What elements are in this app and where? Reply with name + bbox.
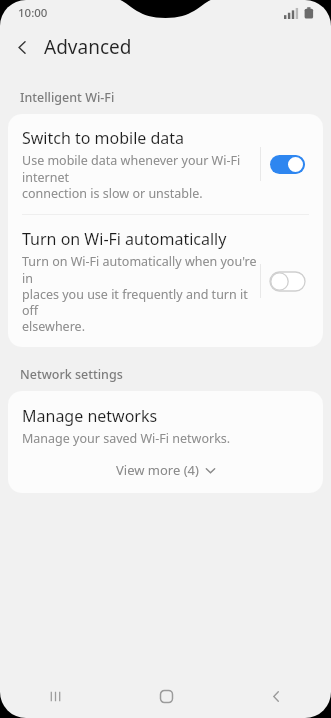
button[interactable]: Turn on Wi-Fi automatically: [8, 215, 323, 347]
staticText: Turn on Wi-Fi automatically: [22, 228, 227, 250]
button[interactable]: Toggle on: [261, 142, 313, 186]
staticText: Intelligent Wi-Fi: [20, 89, 115, 106]
button[interactable]: Recents: [0, 674, 111, 718]
staticText: Switch to mobile data: [22, 127, 185, 149]
staticText: Manage your saved Wi-Fi networks.: [22, 430, 231, 447]
button[interactable]: Back: [221, 674, 331, 718]
staticText: Use mobile data whenever your Wi-Fi inte…: [22, 152, 260, 201]
button[interactable]: View more (4): [8, 457, 323, 493]
staticText: Advanced: [44, 34, 132, 60]
staticText: Manage networks: [22, 405, 158, 427]
staticText: Network settings: [20, 366, 123, 383]
staticText: Turn on Wi-Fi automatically when you're …: [22, 253, 260, 334]
staticText: View more (4): [116, 461, 199, 479]
button[interactable]: Back: [0, 26, 44, 68]
staticText: 10:00: [18, 5, 48, 21]
button[interactable]: Switch to mobile data: [8, 114, 323, 214]
button[interactable]: Manage networks: [8, 391, 323, 457]
button[interactable]: Home: [111, 674, 221, 718]
button[interactable]: Toggle off: [261, 259, 313, 303]
